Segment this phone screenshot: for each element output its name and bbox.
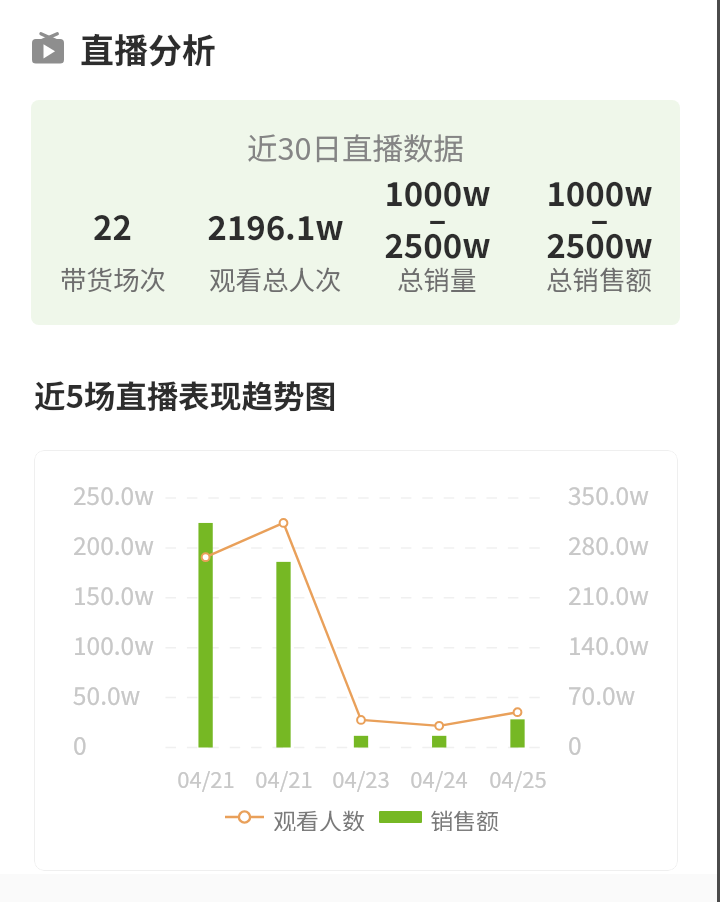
- staticText: 带货场次: [60, 259, 166, 297]
- button[interactable]: 04/21: [171, 762, 241, 794]
- staticText: 210.0w: [568, 577, 649, 612]
- staticText: 0: [73, 727, 87, 762]
- staticText: 总销量: [397, 259, 477, 297]
- button[interactable]: Live broadcast: [32, 24, 216, 73]
- staticText: 70.0w: [568, 677, 636, 712]
- staticText: 近30日直播数据: [31, 125, 680, 169]
- staticText: 04/21: [171, 762, 241, 794]
- staticText: 04/23: [326, 762, 396, 794]
- staticText: 200.0w: [73, 527, 154, 562]
- staticText: 观看人数: [273, 803, 365, 831]
- staticText: 140.0w: [568, 627, 649, 662]
- staticText: 近5场直播表现趋势图: [34, 371, 337, 417]
- button[interactable]: 销售额: [379, 803, 499, 831]
- staticText: 销售额: [430, 803, 499, 831]
- button[interactable]: 04/25: [483, 762, 553, 794]
- staticText: 04/21: [249, 762, 319, 794]
- staticText: 04/24: [404, 762, 474, 794]
- button[interactable]: 04/23: [326, 762, 396, 794]
- other: Live broadcast: [32, 32, 64, 65]
- staticText: 280.0w: [568, 527, 649, 562]
- staticText: 04/25: [483, 762, 553, 794]
- staticText: 直播分析: [80, 24, 216, 73]
- staticText: 50.0w: [73, 677, 141, 712]
- staticText: 150.0w: [73, 577, 154, 612]
- staticText: 1000w – 2500w: [546, 168, 653, 267]
- staticText: 2196.1w: [207, 202, 344, 250]
- button[interactable]: 近30日直播数据: [31, 100, 680, 325]
- button[interactable]: 04/21: [249, 762, 319, 794]
- button[interactable]: 250.0w: [34, 450, 678, 871]
- staticText: 总销售额: [546, 259, 652, 297]
- staticText: 100.0w: [73, 627, 154, 662]
- staticText: 22: [93, 202, 132, 250]
- staticText: 350.0w: [568, 477, 649, 512]
- button[interactable]: 04/24: [404, 762, 474, 794]
- button[interactable]: 观看人数: [225, 803, 365, 831]
- staticText: 观看总人次: [209, 259, 342, 297]
- staticText: 1000w – 2500w: [384, 168, 491, 267]
- staticText: 0: [568, 727, 582, 762]
- staticText: 250.0w: [73, 477, 154, 512]
